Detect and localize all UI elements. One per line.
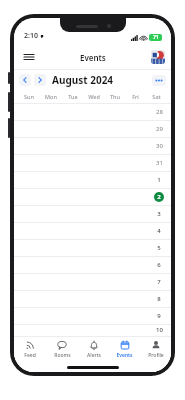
button[interactable]: Feed (14, 337, 46, 362)
button[interactable]: 2 (14, 188, 171, 205)
staticText: 10 (156, 326, 163, 334)
button[interactable]: Alerts (78, 337, 109, 362)
staticText: 31 (156, 159, 163, 167)
staticText: Profile (148, 352, 164, 359)
staticText: 29 (156, 125, 163, 133)
staticText: 8 (157, 295, 161, 303)
button[interactable]: 31 (14, 154, 171, 171)
staticText: August 2024 (52, 73, 114, 87)
button[interactable]: 6 (14, 256, 171, 273)
staticText: Events (80, 52, 106, 63)
staticText: Mon (45, 93, 57, 100)
staticText: Sat (152, 93, 161, 100)
staticText: Sun (24, 93, 34, 100)
button[interactable]: Profile (140, 337, 171, 362)
staticText: 5 (157, 244, 161, 252)
staticText: Rooms (54, 352, 71, 359)
button[interactable]: 1 (14, 171, 171, 188)
staticText: Fri (132, 93, 139, 100)
button[interactable]: Previous month (19, 74, 31, 86)
staticText: 2 (157, 193, 161, 201)
button[interactable]: 3 (14, 205, 171, 222)
staticText: 71 (153, 34, 159, 41)
button[interactable]: 9 (14, 307, 171, 324)
staticText: 30 (156, 142, 163, 150)
button[interactable]: 29 (14, 120, 171, 137)
button[interactable]: More options (152, 75, 166, 86)
staticText: Alerts (87, 352, 101, 359)
staticText: 6 (157, 261, 161, 269)
button[interactable]: 8 (14, 290, 171, 307)
staticText: Events (116, 352, 133, 359)
button[interactable]: 5 (14, 239, 171, 256)
button[interactable]: Rooms (46, 337, 78, 362)
staticText: Wed (88, 93, 100, 100)
staticText: 2:10 (24, 31, 38, 41)
button[interactable]: 4 (14, 222, 171, 239)
staticText: 7 (157, 278, 161, 286)
staticText: Thu (110, 93, 120, 100)
button[interactable]: 10 (14, 324, 171, 336)
button[interactable]: 7 (14, 273, 171, 290)
staticText: 9 (157, 312, 161, 320)
staticText: 28 (156, 108, 163, 116)
button[interactable]: Profile avatar (151, 50, 165, 64)
staticText: Feed (24, 352, 36, 359)
button[interactable]: Events (109, 337, 140, 362)
button[interactable]: Menu (19, 47, 39, 67)
button[interactable]: 28 (14, 103, 171, 120)
staticText: 4 (157, 227, 161, 235)
staticText: 1 (157, 176, 161, 184)
button[interactable]: Next month (34, 74, 46, 86)
staticText: Tue (68, 93, 78, 100)
button[interactable]: 30 (14, 137, 171, 154)
staticText: 3 (157, 210, 161, 218)
